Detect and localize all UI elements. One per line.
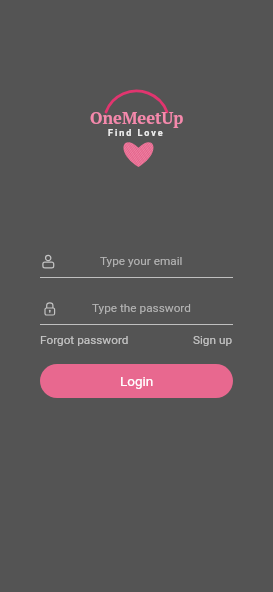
staticText: OneMeetUp [90, 107, 184, 129]
button[interactable]: Forgot password [40, 333, 129, 347]
other: Password [40, 300, 56, 316]
staticText: Type the password [92, 301, 191, 315]
button[interactable]: Sign up [193, 333, 233, 347]
staticText: Type your email [100, 254, 183, 268]
button[interactable]: Login [40, 364, 233, 398]
other: Email [40, 253, 56, 269]
staticText: Find Love [108, 128, 165, 139]
staticText: Login [120, 373, 154, 389]
